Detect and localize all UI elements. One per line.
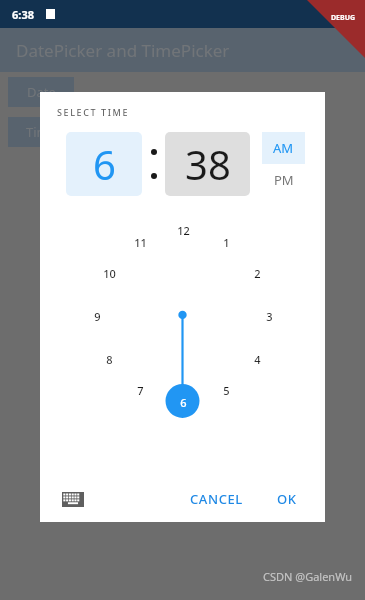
staticText: PM bbox=[274, 171, 294, 189]
button[interactable]: Date bbox=[8, 77, 74, 107]
staticText: 9 bbox=[94, 309, 101, 324]
staticText: 5 bbox=[223, 383, 230, 398]
staticText: 7 bbox=[137, 383, 144, 398]
button[interactable]: 6 bbox=[171, 390, 195, 414]
staticText: 8 bbox=[106, 352, 113, 367]
button[interactable]: 2 bbox=[245, 261, 269, 285]
button[interactable]: PM bbox=[262, 164, 305, 196]
staticText: 1 bbox=[223, 235, 230, 250]
staticText: AM bbox=[273, 139, 294, 157]
button[interactable]: 8 bbox=[97, 347, 121, 371]
button[interactable]: 9 bbox=[85, 304, 109, 328]
staticText: 6 bbox=[180, 395, 187, 410]
staticText: 10 bbox=[103, 266, 116, 281]
staticText: CANCEL bbox=[190, 490, 243, 508]
button[interactable]: 6 bbox=[66, 132, 142, 196]
staticText: DatePicker and TimePicker bbox=[16, 39, 230, 62]
button[interactable]: AM bbox=[262, 132, 305, 164]
button[interactable]: Switch to text input bbox=[58, 484, 88, 514]
staticText: 2 bbox=[254, 266, 261, 281]
button[interactable]: 12 bbox=[171, 218, 195, 242]
button[interactable]: 11 bbox=[128, 230, 152, 254]
button[interactable]: OK bbox=[267, 482, 307, 516]
staticText: 38 bbox=[185, 137, 231, 191]
staticText: Time bbox=[26, 123, 57, 141]
staticText: 3 bbox=[266, 309, 273, 324]
staticText: CSDN @GalenWu bbox=[263, 569, 353, 584]
button[interactable]: 10 bbox=[97, 261, 121, 285]
staticText: 4 bbox=[254, 352, 261, 367]
button[interactable]: 38 bbox=[165, 132, 250, 196]
button[interactable]: Time bbox=[8, 117, 74, 147]
staticText: OK bbox=[277, 490, 297, 508]
button[interactable]: CANCEL bbox=[180, 482, 253, 516]
staticText: DEBUG bbox=[331, 13, 356, 23]
staticText: 6:38 bbox=[12, 7, 34, 22]
button[interactable]: 3 bbox=[257, 304, 281, 328]
staticText: 6 bbox=[93, 137, 116, 191]
staticText: 11 bbox=[134, 235, 147, 250]
button[interactable]: 4 bbox=[245, 347, 269, 371]
button[interactable]: 7 bbox=[128, 378, 152, 402]
staticText: SELECT TIME bbox=[57, 106, 130, 118]
staticText: 12 bbox=[177, 223, 190, 238]
button[interactable]: 5 bbox=[214, 378, 238, 402]
button[interactable]: 1 bbox=[214, 230, 238, 254]
staticText: Date bbox=[27, 83, 56, 101]
